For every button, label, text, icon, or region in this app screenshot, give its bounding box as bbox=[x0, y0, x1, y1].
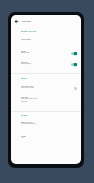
staticText: Version bbox=[21, 135, 27, 137]
button[interactable]: Clear Data bbox=[11, 96, 81, 102]
button[interactable]: Toggle on bbox=[71, 52, 77, 55]
staticText: Images bbox=[21, 50, 27, 52]
button[interactable]: Rate and Update bbox=[11, 121, 81, 125]
button[interactable]: Search Engine bbox=[11, 38, 81, 40]
button[interactable]: JavaScript bbox=[11, 61, 81, 65]
staticText: JavaScript bbox=[21, 61, 28, 63]
staticText: PRIVACY bbox=[21, 77, 28, 79]
staticText: Enable Images bbox=[21, 52, 30, 54]
staticText: Clear Data on Exit bbox=[21, 85, 34, 87]
staticText: Clear Data bbox=[21, 96, 29, 98]
staticText: Search Engine bbox=[21, 38, 31, 40]
staticText: GENERAL SETTINGS bbox=[21, 30, 37, 32]
staticText: Clear Saved Cookies, Cache, Passwords bbox=[21, 98, 38, 102]
button[interactable]: Toggle off bbox=[71, 87, 77, 90]
staticText: Settings bbox=[22, 20, 31, 23]
staticText: 1.2.6 bbox=[21, 137, 24, 139]
staticText: OTHERS bbox=[21, 114, 28, 116]
staticText: Rate and Update bbox=[21, 121, 33, 123]
button[interactable]: Back bbox=[11, 16, 22, 27]
staticText: Rate and update this app bbox=[21, 123, 36, 125]
staticText: Clear data on app exit bbox=[21, 87, 34, 89]
button[interactable]: Toggle on bbox=[71, 63, 77, 66]
button[interactable]: Version bbox=[11, 135, 81, 139]
button[interactable]: Clear Data on Exit bbox=[11, 85, 81, 89]
staticText: Enable JavaScript bbox=[21, 63, 32, 65]
button[interactable]: Images bbox=[11, 50, 81, 54]
